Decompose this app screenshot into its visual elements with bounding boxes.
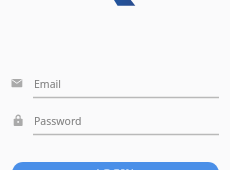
staticText: Password: [34, 114, 82, 128]
button[interactable]: LOGIN: [12, 162, 219, 170]
button[interactable]: Email: [0, 76, 230, 102]
staticText: Email: [34, 77, 61, 91]
button[interactable]: Password: [0, 113, 230, 139]
staticText: LOGIN: [96, 165, 135, 170]
